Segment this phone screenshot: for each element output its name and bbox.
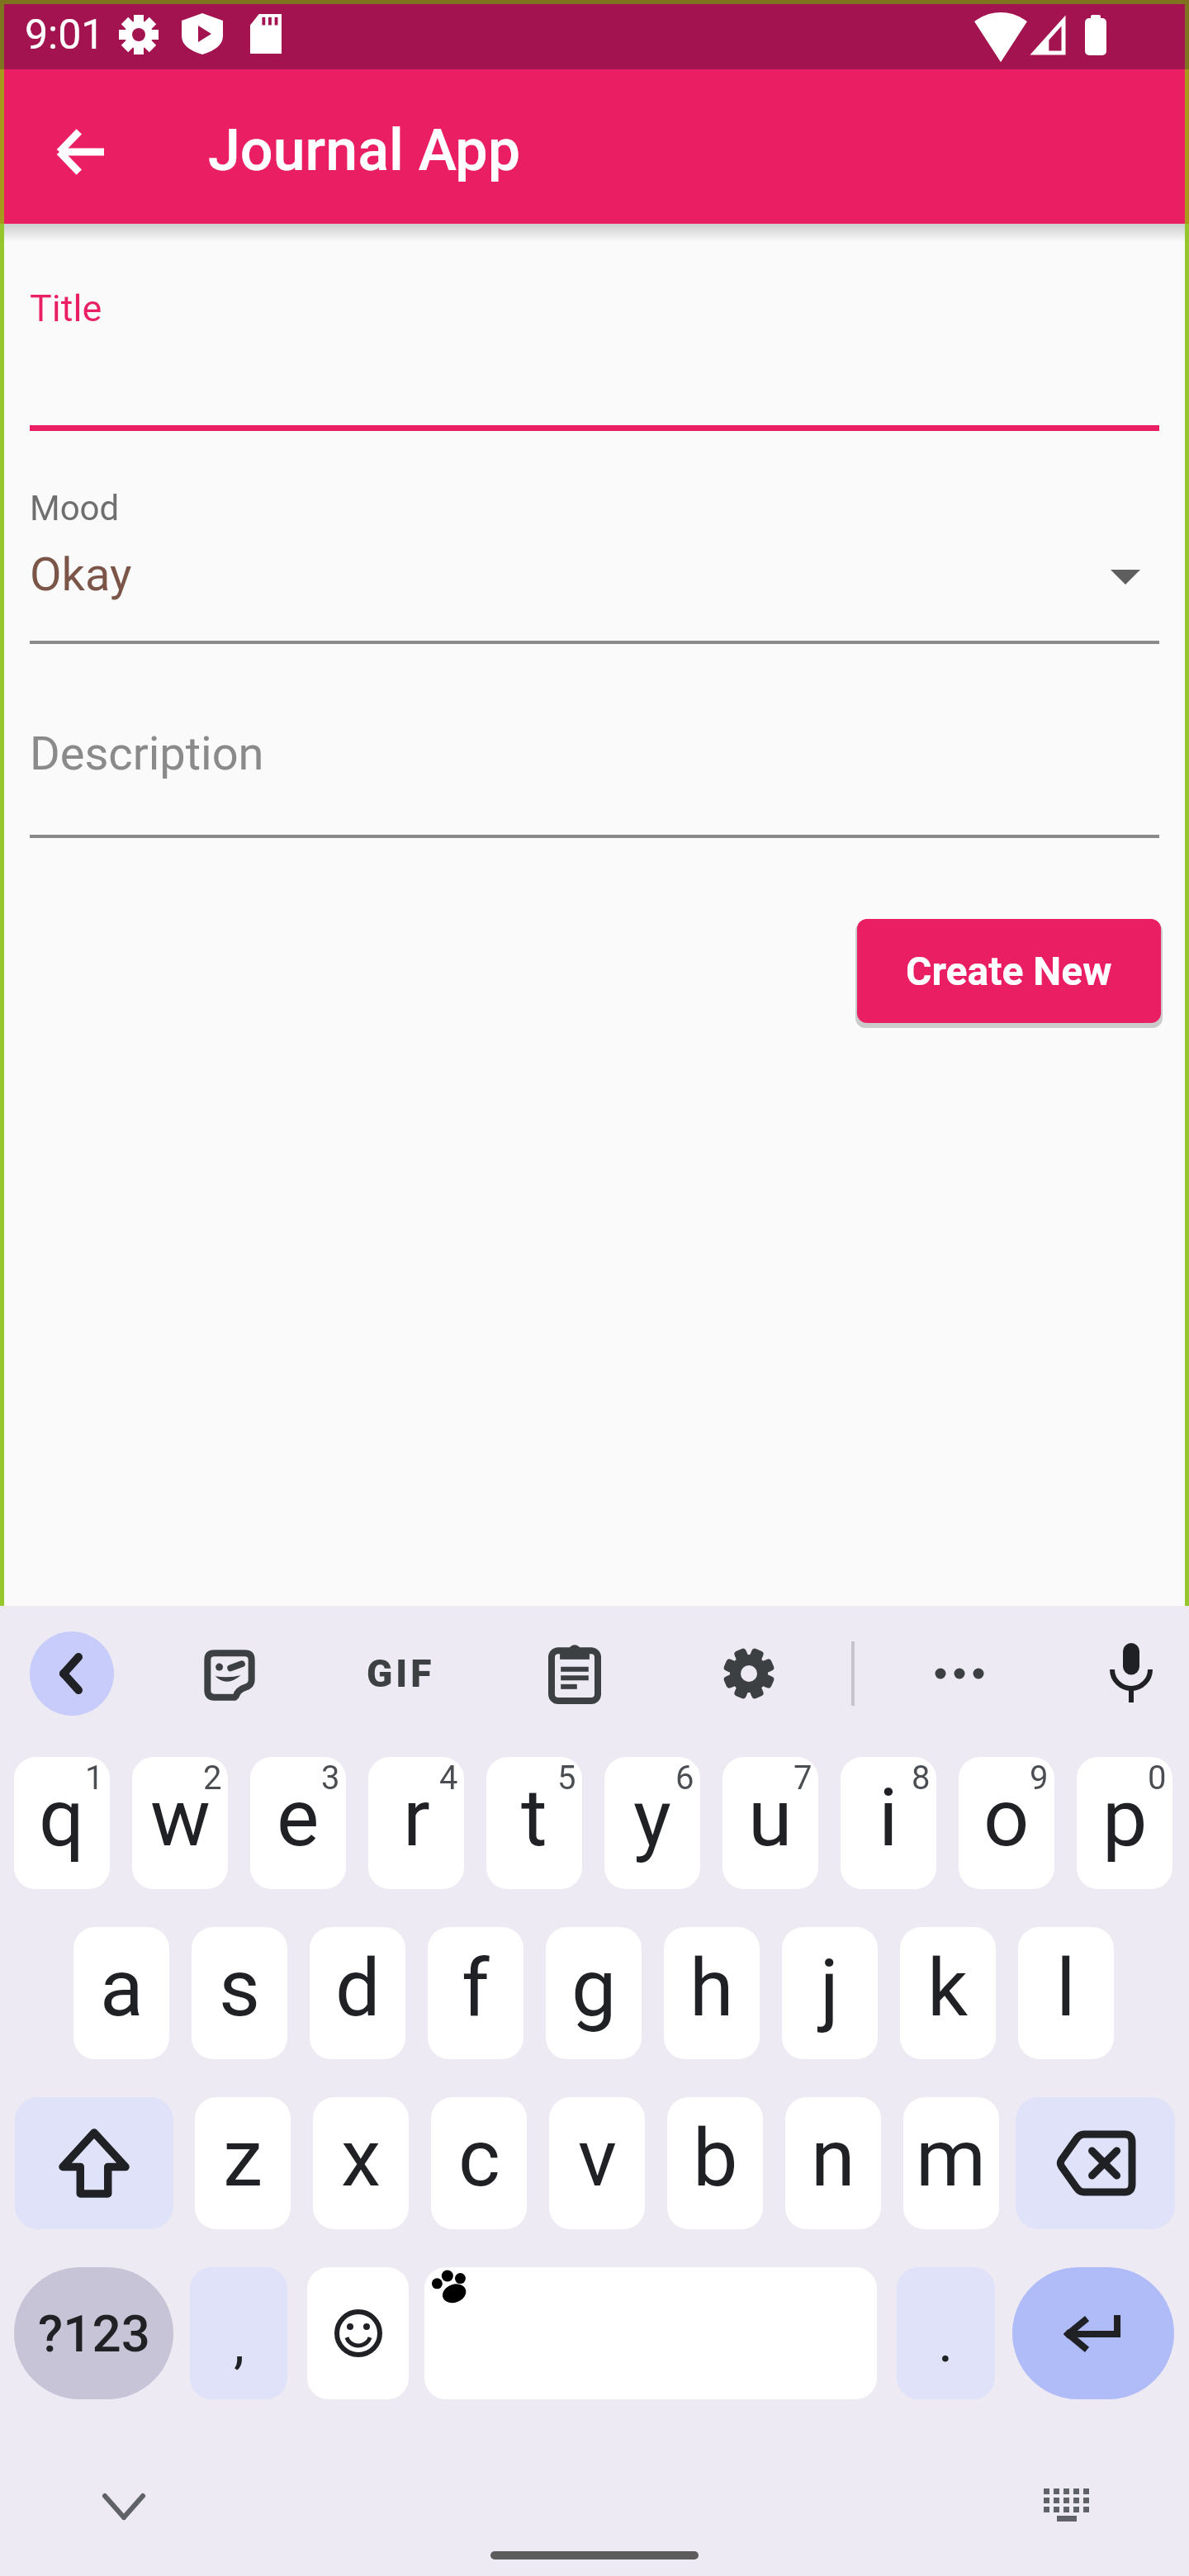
button[interactable] xyxy=(1100,1642,1163,1705)
button[interactable] xyxy=(1034,2472,1100,2538)
button[interactable]: Create New xyxy=(857,919,1161,1023)
staticText: 3 xyxy=(321,1759,340,1797)
staticText: x xyxy=(341,2111,381,2205)
staticText: Title xyxy=(30,286,102,330)
button[interactable] xyxy=(91,2474,157,2540)
staticText: Mood xyxy=(30,488,120,528)
button[interactable]: k xyxy=(900,1927,996,2059)
button[interactable]: x xyxy=(313,2097,409,2229)
button[interactable]: r xyxy=(368,1757,464,1889)
button[interactable] xyxy=(920,1642,999,1705)
staticText: GIF xyxy=(367,1651,435,1696)
button[interactable]: ?123 xyxy=(14,2267,173,2399)
button[interactable]: u xyxy=(722,1757,818,1889)
button[interactable] xyxy=(15,2097,173,2229)
button[interactable]: , xyxy=(190,2267,287,2399)
button[interactable]: d xyxy=(310,1927,405,2059)
staticText: 6 xyxy=(675,1759,694,1797)
staticText: 4 xyxy=(439,1759,458,1797)
button[interactable] xyxy=(424,2267,877,2399)
staticText: i xyxy=(879,1771,898,1865)
staticText: 1 xyxy=(85,1759,104,1797)
staticText: Description xyxy=(30,727,264,781)
staticText: a xyxy=(100,1941,144,2035)
staticText: j xyxy=(820,1941,840,2035)
staticText: d xyxy=(335,1941,381,2035)
staticText: 2 xyxy=(203,1759,222,1797)
button[interactable] xyxy=(198,1644,261,1707)
button[interactable]: w xyxy=(132,1757,228,1889)
button[interactable] xyxy=(30,1631,114,1716)
staticText: Okay xyxy=(30,547,132,602)
staticText: f xyxy=(462,1941,490,2035)
staticText: k xyxy=(927,1941,969,2035)
button[interactable]: f xyxy=(428,1927,523,2059)
staticText: 9 xyxy=(1030,1759,1049,1797)
button[interactable] xyxy=(1012,2267,1174,2399)
button[interactable]: s xyxy=(192,1927,287,2059)
button[interactable]: t xyxy=(486,1757,582,1889)
button[interactable]: z xyxy=(195,2097,291,2229)
staticText: Create New xyxy=(906,948,1112,994)
staticText: l xyxy=(1056,1941,1076,2035)
staticText: n xyxy=(811,2111,855,2205)
button[interactable]: h xyxy=(664,1927,760,2059)
button[interactable] xyxy=(1016,2097,1175,2229)
button[interactable]: v xyxy=(549,2097,645,2229)
staticText: ?123 xyxy=(38,2304,150,2364)
button[interactable] xyxy=(40,111,122,193)
button[interactable]: j xyxy=(782,1927,878,2059)
staticText: Journal App xyxy=(208,116,521,184)
staticText: w xyxy=(150,1771,211,1865)
button[interactable]: e xyxy=(250,1757,346,1889)
button[interactable]: o xyxy=(959,1757,1054,1889)
staticText: m xyxy=(916,2111,987,2205)
staticText: r xyxy=(403,1771,430,1865)
button[interactable]: g xyxy=(546,1927,642,2059)
staticText: z xyxy=(223,2111,263,2205)
staticText: . xyxy=(938,2308,954,2375)
button[interactable]: . xyxy=(897,2267,995,2399)
button[interactable]: p xyxy=(1077,1757,1172,1889)
button[interactable]: q xyxy=(14,1757,110,1889)
button[interactable] xyxy=(543,1642,606,1705)
button[interactable]: a xyxy=(73,1927,169,2059)
button[interactable] xyxy=(307,2267,409,2399)
staticText: 0 xyxy=(1148,1759,1167,1797)
button[interactable]: m xyxy=(903,2097,999,2229)
staticText: 5 xyxy=(557,1759,576,1797)
staticText: b xyxy=(693,2111,738,2205)
staticText: 8 xyxy=(912,1759,931,1797)
staticText: , xyxy=(234,2312,244,2375)
staticText: h xyxy=(689,1941,734,2035)
staticText: o xyxy=(983,1771,1030,1865)
staticText: e xyxy=(277,1771,320,1865)
button[interactable]: n xyxy=(785,2097,881,2229)
button[interactable]: c xyxy=(431,2097,527,2229)
staticText: p xyxy=(1102,1771,1148,1865)
button[interactable] xyxy=(718,1642,780,1705)
button[interactable]: y xyxy=(604,1757,700,1889)
staticText: u xyxy=(748,1771,793,1865)
staticText: s xyxy=(219,1941,261,2035)
button[interactable]: b xyxy=(667,2097,763,2229)
staticText: y xyxy=(633,1771,671,1865)
staticText: v xyxy=(578,2111,617,2205)
staticText: 9:01 xyxy=(25,11,105,59)
staticText: t xyxy=(521,1771,547,1865)
button[interactable]: l xyxy=(1018,1927,1114,2059)
staticText: q xyxy=(39,1771,85,1865)
button[interactable]: i xyxy=(841,1757,936,1889)
staticText: c xyxy=(458,2111,500,2205)
staticText: g xyxy=(571,1941,617,2035)
button[interactable]: GIF xyxy=(347,1642,454,1705)
staticText: 7 xyxy=(793,1759,812,1797)
